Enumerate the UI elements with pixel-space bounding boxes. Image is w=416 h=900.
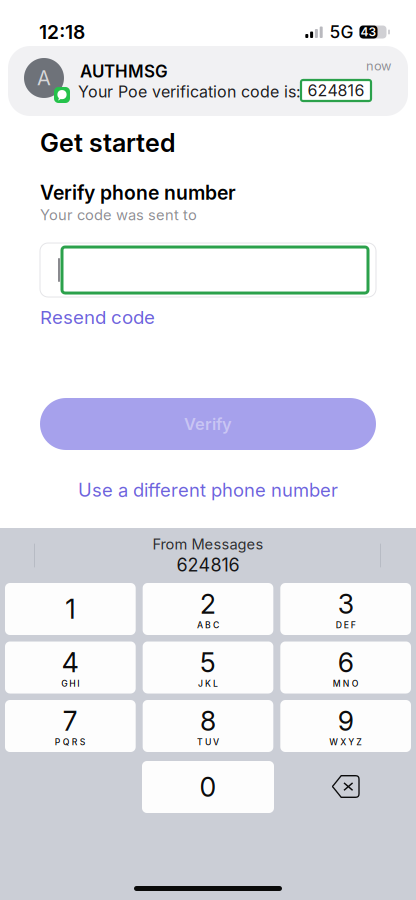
button[interactable]: 9 [280, 700, 411, 752]
staticText: 4 [62, 646, 79, 679]
button[interactable]: 1 [5, 583, 136, 635]
staticText: From Messages [152, 535, 263, 553]
staticText: 2 [200, 588, 216, 620]
staticText: 0 [199, 771, 216, 803]
button[interactable]: Use a different phone number [63, 474, 353, 506]
button[interactable]: From Messages [108, 534, 308, 576]
staticText: 7 [63, 705, 78, 737]
button[interactable]: 3 [280, 583, 411, 635]
button[interactable]: A [8, 46, 408, 116]
staticText: Use a different phone number [78, 479, 338, 501]
staticText: Your code was sent to [40, 206, 197, 224]
staticText: P Q R S [55, 737, 86, 747]
button[interactable]: Resend code [38, 299, 157, 336]
button[interactable]: 2 [143, 583, 273, 635]
staticText: Your Poe verification code is: [78, 82, 301, 101]
button[interactable]: 0 [142, 761, 274, 813]
staticText: 8 [200, 705, 216, 737]
staticText: Verify [184, 414, 232, 434]
staticText: 9 [338, 705, 354, 737]
button[interactable]: Verify [40, 398, 376, 450]
button[interactable]: 7 [5, 700, 136, 752]
staticText: 1 [65, 593, 75, 625]
staticText: Resend code [40, 306, 155, 329]
button[interactable]: 6 [280, 641, 411, 693]
staticText: 5G [329, 21, 353, 42]
staticText: A B C [197, 620, 219, 630]
staticText: A [37, 66, 51, 90]
button[interactable]: 5 [143, 641, 273, 693]
button[interactable]: 4 [5, 641, 136, 693]
button[interactable]: 8 [143, 700, 273, 752]
staticText: T U V [197, 737, 219, 747]
staticText: 12:18 [39, 20, 85, 44]
staticText: 624816 [176, 554, 239, 576]
staticText: 6 [338, 646, 354, 679]
staticText: Verify phone number [40, 181, 236, 204]
staticText: 624816 [307, 81, 364, 100]
staticText: 3 [338, 588, 354, 620]
staticText: 5 [200, 646, 216, 679]
staticText: AUTHMSG [80, 61, 168, 81]
staticText: Get started [40, 127, 176, 158]
button[interactable]: Delete [331, 774, 361, 799]
staticText: J K L [198, 678, 218, 689]
staticText: M N O [333, 678, 359, 689]
staticText: G H I [61, 678, 79, 689]
staticText: now [366, 58, 391, 73]
staticText: W X Y Z [329, 737, 362, 747]
staticText: D E F [336, 620, 356, 630]
staticText: 43 [360, 25, 376, 39]
